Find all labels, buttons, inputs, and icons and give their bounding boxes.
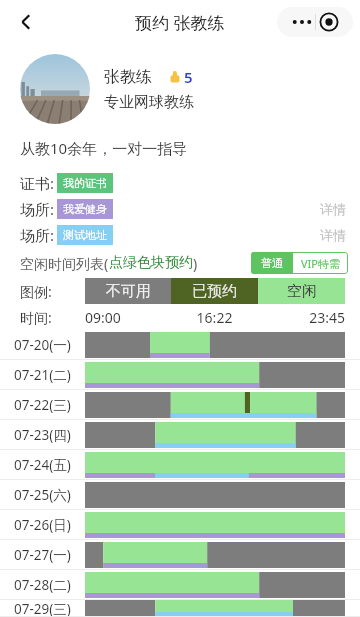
button[interactable]: 07-22(三) (0, 390, 360, 420)
staticText: 23:45 (258, 308, 345, 327)
staticText: 图例: (20, 282, 52, 301)
staticText: 07-23(四) (14, 426, 71, 444)
button[interactable]: 07-20(一) (0, 330, 360, 360)
staticText: 07-28(二) (14, 576, 71, 594)
staticText: 证书: (20, 173, 55, 193)
staticText: 07-27(一) (14, 546, 71, 564)
button[interactable]: 空闲 (258, 278, 345, 304)
button[interactable]: 普通 (251, 252, 293, 274)
staticText: 专业网球教练 (104, 93, 194, 112)
staticText: 已预约 (192, 282, 237, 301)
button[interactable]: 不可用 (85, 278, 171, 304)
staticText: 详情 (320, 227, 346, 243)
staticText: 时间: (20, 308, 52, 327)
staticText: 09:00 (85, 308, 171, 327)
staticText: 5 (184, 67, 193, 87)
button[interactable]: Back (8, 4, 44, 40)
staticText: 07-20(一) (14, 336, 71, 354)
staticText: 场所: (20, 199, 55, 219)
button[interactable]: 07-23(四) (0, 420, 360, 450)
staticText: 从教10余年，一对一指导 (20, 138, 188, 158)
staticText: 空闲 (287, 282, 317, 301)
button[interactable]: 07-28(二) (0, 570, 360, 600)
staticText: 07-29(三) (14, 600, 71, 617)
staticText: 普通 (261, 256, 283, 270)
button[interactable]: Menu (277, 7, 353, 37)
button[interactable]: 证书: (0, 170, 360, 196)
staticText: 详情 (320, 201, 346, 217)
staticText: 张教练 (104, 67, 152, 87)
button[interactable]: 场所: (0, 196, 360, 222)
button[interactable]: 07-29(三) (0, 600, 360, 617)
staticText: 空闲时间列表( (20, 254, 109, 273)
button[interactable]: 07-24(五) (0, 450, 360, 480)
button[interactable]: 07-27(一) (0, 540, 360, 570)
button[interactable]: 07-21(二) (0, 360, 360, 390)
button[interactable]: 07-25(六) (0, 480, 360, 510)
button[interactable]: 场所: (0, 222, 360, 248)
staticText: 不可用 (106, 282, 151, 301)
staticText: 场所: (20, 225, 55, 245)
button[interactable]: VIP特需 (293, 252, 348, 274)
staticText: 07-25(六) (14, 486, 71, 504)
staticText: VIP特需 (301, 256, 340, 271)
staticText: 点绿色块预约 (109, 254, 193, 272)
staticText: ) (193, 254, 198, 273)
staticText: 07-21(二) (14, 366, 71, 384)
staticText: 测试地址 (63, 228, 107, 242)
staticText: 我的证书 (63, 176, 107, 190)
button[interactable]: 已预约 (171, 278, 258, 304)
staticText: 预约 张教练 (135, 11, 225, 34)
button[interactable]: 07-26(日) (0, 510, 360, 540)
staticText: 07-26(日) (14, 516, 71, 534)
staticText: 我爱健身 (63, 202, 107, 216)
staticText: 07-22(三) (14, 396, 71, 414)
staticText: 07-24(五) (14, 456, 71, 474)
staticText: 16:22 (171, 308, 258, 327)
